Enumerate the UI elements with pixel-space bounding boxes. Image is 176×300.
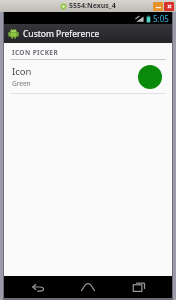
button[interactable]: Close xyxy=(164,2,174,11)
other: Green icon xyxy=(138,65,162,89)
button[interactable]: Icon xyxy=(4,60,172,93)
staticText: Icon xyxy=(12,65,32,78)
staticText: Green xyxy=(12,79,31,88)
button[interactable]: Back xyxy=(21,276,55,298)
staticText: 5:05 xyxy=(153,13,169,24)
button[interactable]: Recent apps xyxy=(122,276,156,298)
staticText: 5554:Nexus_4 xyxy=(69,1,116,11)
staticText: Custom Preference xyxy=(23,28,100,40)
button[interactable]: Minimize xyxy=(153,2,163,11)
button[interactable]: Home xyxy=(71,276,105,298)
staticText: ICON PICKER xyxy=(12,48,59,57)
